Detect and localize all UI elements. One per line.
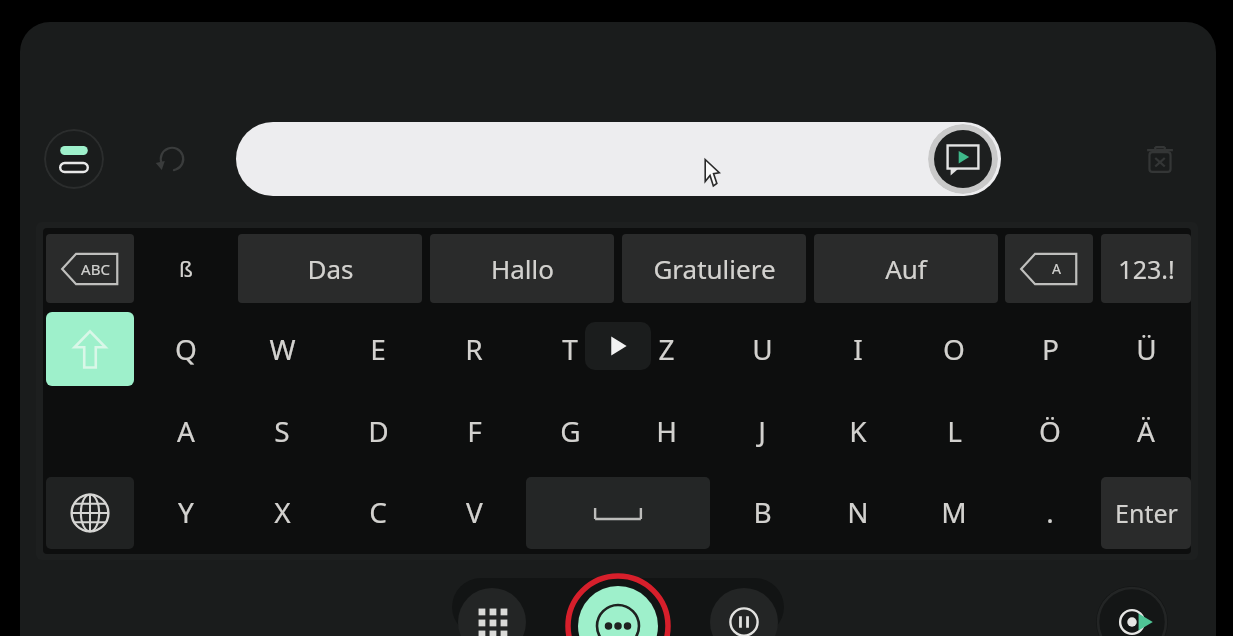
- button[interactable]: P: [1010, 319, 1090, 379]
- staticText: B: [753, 493, 772, 531]
- button[interactable]: Space: [526, 477, 710, 549]
- button[interactable]: ABC: [46, 234, 134, 303]
- staticText: C: [369, 493, 387, 531]
- staticText: Gratuliere: [653, 251, 776, 286]
- button[interactable]: K: [818, 401, 898, 461]
- staticText: O: [943, 330, 965, 368]
- button[interactable]: Shift: [46, 312, 134, 386]
- button[interactable]: B: [722, 482, 802, 542]
- button[interactable]: Keyboard layout: [44, 129, 104, 189]
- button[interactable]: A: [1005, 234, 1093, 303]
- button[interactable]: [236, 122, 1001, 196]
- button[interactable]: Ü: [1106, 319, 1186, 379]
- staticText: U: [752, 330, 773, 368]
- staticText: P: [1042, 330, 1059, 368]
- button[interactable]: T: [530, 319, 610, 379]
- staticText: N: [847, 493, 869, 531]
- button[interactable]: Y: [146, 482, 226, 542]
- button[interactable]: L: [914, 401, 994, 461]
- button[interactable]: Ä: [1106, 401, 1186, 461]
- staticText: L: [947, 412, 962, 450]
- button[interactable]: Gratuliere: [622, 234, 806, 303]
- button[interactable]: Preview: [1096, 586, 1168, 636]
- button[interactable]: H: [626, 401, 706, 461]
- button[interactable]: N: [818, 482, 898, 542]
- staticText: I: [853, 330, 863, 368]
- button[interactable]: F: [434, 401, 514, 461]
- staticText: Ü: [1136, 330, 1157, 368]
- staticText: K: [849, 412, 867, 450]
- button[interactable]: Auf: [814, 234, 998, 303]
- staticText: W: [269, 330, 296, 368]
- button[interactable]: D: [338, 401, 418, 461]
- button[interactable]: Hallo: [430, 234, 614, 303]
- button[interactable]: Ö: [1010, 401, 1090, 461]
- button[interactable]: Keyboard grid: [458, 588, 526, 636]
- button[interactable]: E: [338, 319, 418, 379]
- staticText: Das: [307, 251, 354, 286]
- button[interactable]: X: [242, 482, 322, 542]
- staticText: Ä: [1137, 412, 1155, 450]
- button[interactable]: Play: [585, 322, 651, 370]
- staticText: X: [274, 493, 291, 531]
- staticText: 123.!: [1118, 252, 1175, 286]
- staticText: ß: [179, 253, 193, 283]
- button[interactable]: R: [434, 319, 514, 379]
- button[interactable]: Z: [626, 319, 706, 379]
- staticText: Hallo: [491, 251, 554, 286]
- button[interactable]: More options: [564, 572, 672, 636]
- staticText: F: [467, 412, 482, 450]
- button[interactable]: M: [914, 482, 994, 542]
- button[interactable]: Undo: [142, 130, 200, 188]
- staticText: M: [941, 493, 967, 531]
- button[interactable]: Delete: [1131, 130, 1189, 188]
- staticText: S: [274, 412, 290, 450]
- staticText: V: [466, 493, 483, 531]
- button[interactable]: A: [146, 401, 226, 461]
- button[interactable]: Change language: [46, 477, 134, 549]
- staticText: A: [1052, 259, 1061, 278]
- staticText: R: [465, 330, 483, 368]
- staticText: Q: [175, 330, 197, 368]
- button[interactable]: Das: [238, 234, 422, 303]
- staticText: E: [370, 330, 386, 368]
- staticText: Ö: [1039, 412, 1061, 450]
- button[interactable]: U: [722, 319, 802, 379]
- staticText: J: [758, 412, 766, 450]
- button[interactable]: .: [1010, 482, 1090, 542]
- button[interactable]: S: [242, 401, 322, 461]
- staticText: Y: [178, 493, 194, 531]
- button[interactable]: 123.!: [1101, 234, 1191, 303]
- button[interactable]: V: [434, 482, 514, 542]
- button[interactable]: ß: [146, 238, 226, 298]
- staticText: .: [1046, 493, 1054, 531]
- staticText: T: [562, 330, 578, 368]
- staticText: Z: [658, 330, 675, 368]
- button[interactable]: I: [818, 319, 898, 379]
- staticText: H: [656, 412, 677, 450]
- staticText: G: [560, 412, 581, 450]
- button[interactable]: J: [722, 401, 802, 461]
- staticText: Enter: [1115, 496, 1178, 530]
- button[interactable]: Enter: [1101, 477, 1191, 549]
- button[interactable]: C: [338, 482, 418, 542]
- staticText: Auf: [885, 251, 927, 286]
- staticText: D: [368, 412, 389, 450]
- button[interactable]: Send: [928, 124, 998, 194]
- staticText: ABC: [81, 259, 110, 279]
- button[interactable]: O: [914, 319, 994, 379]
- staticText: A: [177, 412, 195, 450]
- button[interactable]: W: [242, 319, 322, 379]
- button[interactable]: Q: [146, 319, 226, 379]
- button[interactable]: G: [530, 401, 610, 461]
- button[interactable]: Pause: [710, 588, 778, 636]
